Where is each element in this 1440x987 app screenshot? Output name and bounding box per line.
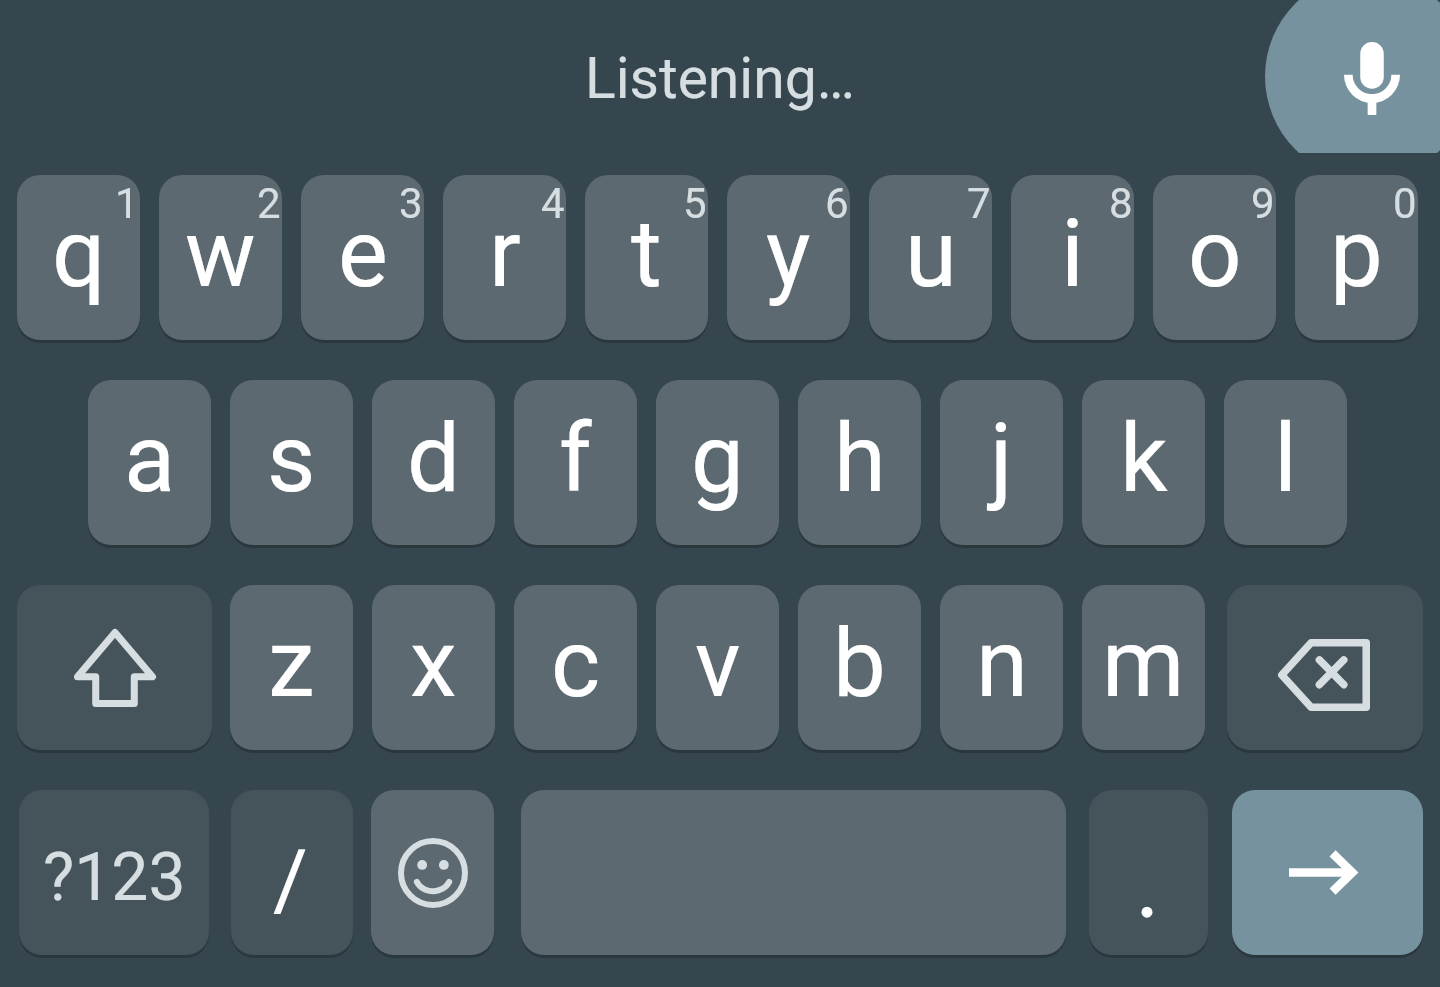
staticText: 0 — [1393, 179, 1417, 228]
button[interactable]: / — [231, 790, 353, 955]
staticText: a — [124, 404, 176, 514]
staticText: z — [268, 609, 315, 719]
button[interactable]: Voice input — [1265, 0, 1440, 153]
staticText: g — [691, 404, 744, 514]
button[interactable]: k — [1082, 380, 1205, 545]
button[interactable]: a — [88, 380, 211, 545]
button[interactable]: t — [585, 175, 708, 340]
button[interactable]: d — [372, 380, 495, 545]
staticText: v — [695, 609, 741, 719]
staticText: x — [410, 609, 457, 719]
staticText: i — [1061, 199, 1084, 309]
button[interactable]: v — [656, 585, 779, 750]
staticText: m — [1102, 609, 1185, 719]
button[interactable]: o — [1153, 175, 1276, 340]
button[interactable]: Symbols — [19, 790, 209, 955]
button[interactable]: j — [940, 380, 1063, 545]
button[interactable]: b — [798, 585, 921, 750]
button[interactable]: h — [798, 380, 921, 545]
staticText: p — [1330, 199, 1383, 309]
staticText: c — [551, 609, 601, 719]
button[interactable]: p — [1295, 175, 1418, 340]
staticText: s — [267, 404, 316, 514]
button[interactable]: f — [514, 380, 637, 545]
staticText: w — [185, 199, 256, 309]
staticText: b — [833, 609, 886, 719]
staticText: y — [766, 199, 811, 309]
button[interactable]: w — [159, 175, 282, 340]
staticText: u — [905, 199, 957, 309]
button[interactable]: Enter — [1232, 790, 1423, 955]
staticText: r — [489, 199, 521, 309]
staticText: n — [976, 609, 1028, 719]
button[interactable]: r — [443, 175, 566, 340]
button[interactable]: z — [230, 585, 353, 750]
staticText: 4 — [541, 179, 565, 228]
button[interactable]: c — [514, 585, 637, 750]
staticText: f — [559, 404, 592, 514]
staticText: 3 — [399, 179, 423, 228]
button[interactable]: x — [372, 585, 495, 750]
staticText: e — [338, 199, 388, 309]
button[interactable]: s — [230, 380, 353, 545]
staticText: 8 — [1109, 179, 1133, 228]
button[interactable]: l — [1224, 380, 1347, 545]
button[interactable]: i — [1011, 175, 1134, 340]
button[interactable]: y — [727, 175, 850, 340]
button[interactable]: Backspace — [1227, 585, 1423, 750]
staticText: 1 — [115, 179, 139, 228]
staticText: h — [834, 404, 886, 514]
staticText: j — [990, 404, 1013, 514]
button[interactable]: e — [301, 175, 424, 340]
staticText: o — [1188, 199, 1242, 309]
staticText: 2 — [257, 179, 281, 228]
staticText: Listening… — [585, 45, 855, 112]
staticText: l — [1274, 404, 1297, 514]
button[interactable]: Emoji — [371, 790, 494, 955]
button[interactable]: Shift — [17, 585, 212, 750]
staticText: d — [407, 404, 461, 514]
staticText: k — [1120, 404, 1168, 514]
staticText: q — [52, 199, 106, 309]
staticText: ?123 — [43, 839, 186, 916]
button[interactable]: Period — [1089, 790, 1208, 955]
staticText: 9 — [1251, 179, 1275, 228]
staticText: 7 — [967, 179, 991, 228]
button[interactable]: u — [869, 175, 992, 340]
staticText: 6 — [825, 179, 849, 228]
staticText: t — [631, 199, 662, 309]
button[interactable]: n — [940, 585, 1063, 750]
button[interactable]: q — [17, 175, 140, 340]
button[interactable]: m — [1082, 585, 1205, 750]
button[interactable]: g — [656, 380, 779, 545]
staticText: / — [273, 831, 308, 929]
staticText: 5 — [683, 179, 707, 228]
